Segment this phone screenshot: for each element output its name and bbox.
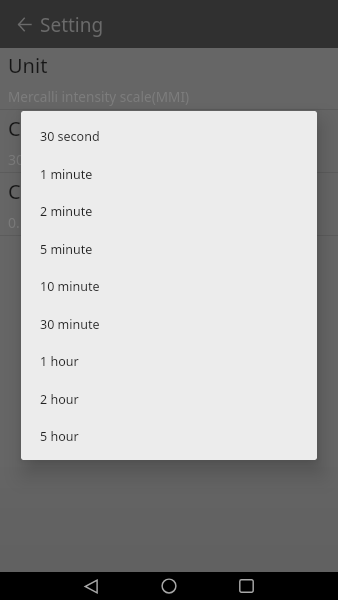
staticText: 0.1 (8, 213, 28, 232)
button[interactable]: Back (3, 0, 45, 48)
button[interactable]: 2 hour (21, 380, 317, 418)
button[interactable]: Critical magnitude (0, 173, 338, 235)
button[interactable]: 1 hour (21, 342, 317, 380)
staticText: Critical magnitude (8, 178, 181, 205)
staticText: Setting (40, 12, 104, 38)
staticText: 30 second (40, 128, 100, 145)
staticText: 1 minute (40, 166, 93, 183)
button[interactable]: 1 minute (21, 155, 317, 193)
button[interactable]: Recent apps (232, 572, 260, 600)
staticText: 1 hour (40, 353, 79, 370)
staticText: 2 minute (40, 203, 93, 220)
staticText: 5 minute (40, 241, 93, 258)
staticText: 5 hour (40, 428, 79, 445)
staticText: 10 minute (40, 278, 100, 295)
button[interactable]: Home (155, 572, 183, 600)
button[interactable]: 10 minute (21, 267, 317, 305)
button[interactable]: 5 hour (21, 417, 317, 455)
staticText: 2 hour (40, 391, 79, 408)
button[interactable]: 2 minute (21, 192, 317, 230)
button[interactable]: 30 minute (21, 305, 317, 343)
staticText: Check interval (8, 115, 141, 142)
button[interactable]: 30 second (21, 117, 317, 155)
staticText: 30 second (8, 150, 75, 169)
staticText: 30 minute (40, 316, 100, 333)
button[interactable]: 5 minute (21, 230, 317, 268)
staticText: Unit (8, 52, 48, 79)
button[interactable]: Back (77, 572, 105, 600)
staticText: Mercalli intensity scale(MMI) (8, 87, 190, 106)
button[interactable]: Check interval (0, 110, 338, 172)
